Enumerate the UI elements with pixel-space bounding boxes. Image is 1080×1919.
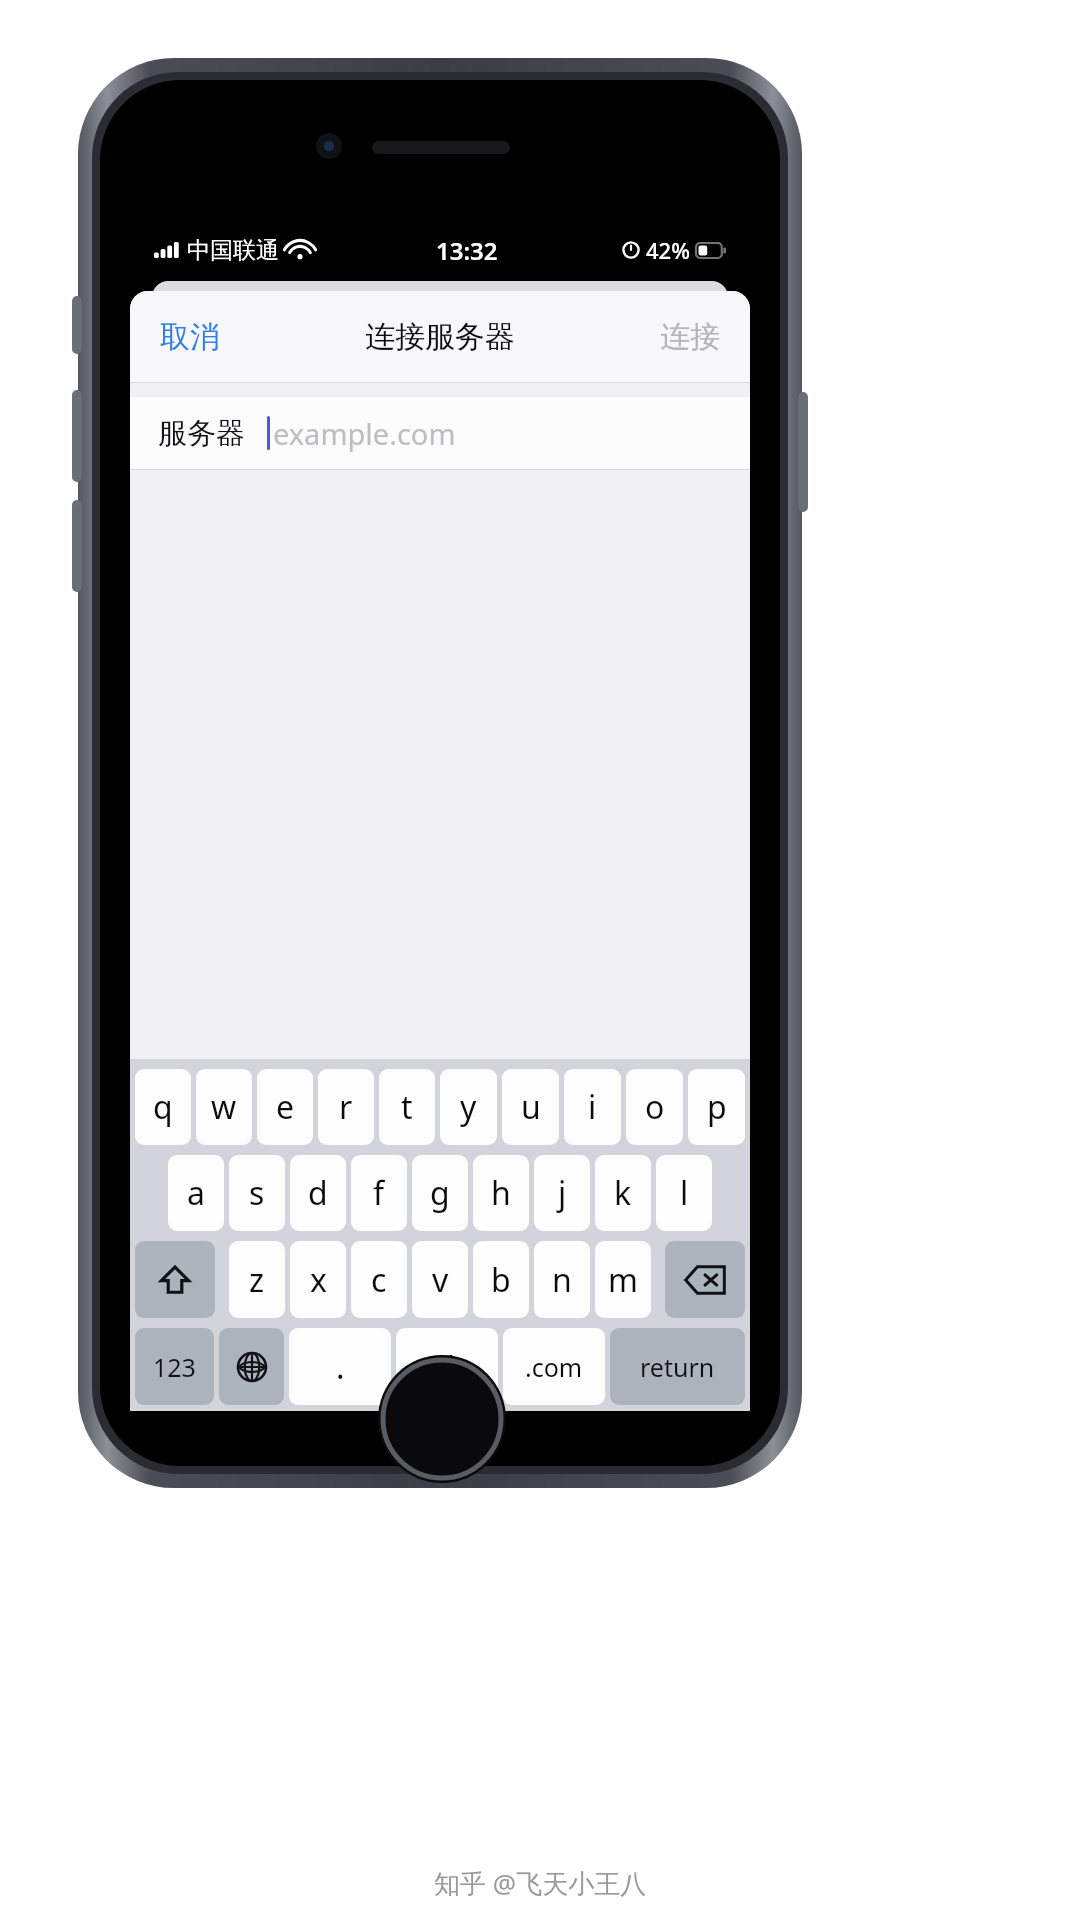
staticText: x xyxy=(310,1258,327,1302)
staticText: c xyxy=(371,1258,387,1302)
staticText: o xyxy=(645,1085,665,1129)
button[interactable]: n xyxy=(534,1241,590,1318)
staticText: 服务器 xyxy=(158,415,245,452)
button[interactable]: return xyxy=(610,1328,745,1405)
button[interactable]: b xyxy=(473,1241,529,1318)
button[interactable]: z xyxy=(229,1241,285,1318)
button[interactable]: Backspace xyxy=(665,1241,745,1318)
staticText: / xyxy=(441,1345,453,1389)
staticText: f xyxy=(373,1171,385,1215)
button[interactable]: Switch keyboard xyxy=(219,1328,284,1405)
staticText: a xyxy=(187,1171,205,1215)
staticText: p xyxy=(707,1085,727,1129)
staticText: v xyxy=(432,1258,449,1302)
button[interactable]: f xyxy=(351,1155,407,1231)
button[interactable]: x xyxy=(290,1241,346,1318)
staticText: s xyxy=(249,1171,265,1215)
button[interactable]: e xyxy=(257,1069,313,1145)
staticText: 连接 xyxy=(660,318,720,356)
button[interactable]: p xyxy=(688,1069,745,1145)
button[interactable]: .com xyxy=(503,1328,605,1405)
button[interactable]: 服务器 xyxy=(130,397,750,469)
button[interactable]: / xyxy=(396,1328,498,1405)
button[interactable]: s xyxy=(229,1155,285,1231)
staticText: . xyxy=(336,1345,345,1389)
staticText: 知乎 @飞天小王八 xyxy=(434,1865,647,1901)
staticText: y xyxy=(460,1085,477,1129)
button[interactable]: 123 xyxy=(135,1328,214,1405)
staticText: 连接服务器 xyxy=(365,318,515,356)
button[interactable]: g xyxy=(412,1155,468,1231)
button[interactable]: u xyxy=(502,1069,559,1145)
button[interactable]: i xyxy=(564,1069,621,1145)
button[interactable]: q xyxy=(135,1069,191,1145)
button[interactable]: . xyxy=(289,1328,391,1405)
staticText: u xyxy=(521,1085,541,1129)
staticText: z xyxy=(249,1258,265,1302)
button[interactable]: r xyxy=(318,1069,374,1145)
staticText: r xyxy=(339,1085,353,1129)
staticText: q xyxy=(153,1085,173,1129)
staticText: k xyxy=(614,1171,632,1215)
staticText: 13:32 xyxy=(436,234,498,267)
staticText: 42% xyxy=(646,235,690,265)
staticText: i xyxy=(588,1085,597,1129)
staticText: t xyxy=(401,1085,413,1129)
button[interactable]: d xyxy=(290,1155,346,1231)
staticText: h xyxy=(491,1171,511,1215)
staticText: n xyxy=(552,1258,572,1302)
button[interactable]: l xyxy=(656,1155,712,1231)
staticText: example.com xyxy=(273,414,456,453)
button[interactable]: k xyxy=(595,1155,651,1231)
button[interactable]: t xyxy=(379,1069,435,1145)
staticText: g xyxy=(430,1171,450,1215)
button[interactable]: v xyxy=(412,1241,468,1318)
button[interactable]: w xyxy=(196,1069,252,1145)
button[interactable]: Shift xyxy=(135,1241,215,1318)
button[interactable]: o xyxy=(626,1069,683,1145)
staticText: l xyxy=(680,1171,689,1215)
button[interactable]: j xyxy=(534,1155,590,1231)
button[interactable]: 取消 xyxy=(142,308,238,366)
staticText: b xyxy=(491,1258,511,1302)
button[interactable]: y xyxy=(440,1069,497,1145)
staticText: e xyxy=(276,1085,295,1129)
staticText: d xyxy=(308,1171,328,1215)
staticText: return xyxy=(640,1350,715,1384)
staticText: m xyxy=(608,1258,638,1302)
staticText: j xyxy=(558,1171,567,1215)
staticText: 取消 xyxy=(160,318,220,356)
button[interactable]: c xyxy=(351,1241,407,1318)
button[interactable]: h xyxy=(473,1155,529,1231)
staticText: .com xyxy=(525,1350,583,1384)
staticText: 中国联通 xyxy=(187,236,279,265)
staticText: w xyxy=(211,1085,237,1129)
staticText: 123 xyxy=(153,1350,196,1384)
button[interactable]: m xyxy=(595,1241,651,1318)
button[interactable]: a xyxy=(168,1155,224,1231)
button[interactable]: 连接 xyxy=(642,308,738,366)
